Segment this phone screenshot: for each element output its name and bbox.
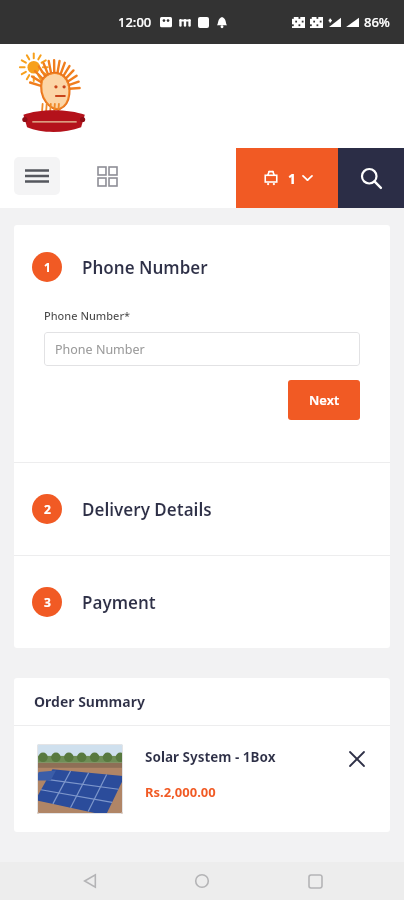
staticText: 1	[288, 169, 297, 188]
button[interactable]: Back	[67, 862, 113, 900]
staticText: Phone Number	[82, 256, 208, 279]
staticText: Rs.2,000.00	[145, 783, 216, 801]
staticText: Payment	[82, 591, 156, 614]
staticText: Phone Number	[55, 341, 145, 358]
button[interactable]: Home logo	[16, 54, 90, 132]
staticText: Delivery Details	[82, 498, 212, 521]
button[interactable]: Recent apps	[292, 862, 338, 900]
button[interactable]: Phone Number	[44, 332, 360, 366]
staticText: 3	[44, 594, 51, 610]
button[interactable]: 1	[236, 148, 338, 208]
staticText: 1	[44, 259, 51, 275]
button[interactable]: Menu	[14, 157, 60, 195]
staticText: Phone Number*	[44, 308, 131, 323]
button[interactable]: Remove item	[342, 744, 372, 774]
staticText: 2	[44, 501, 51, 517]
staticText: 86%	[364, 13, 390, 31]
staticText: Next	[309, 391, 340, 409]
button[interactable]: Home	[179, 862, 225, 900]
button[interactable]: 3	[14, 556, 390, 648]
button[interactable]: Search	[338, 148, 404, 208]
staticText: 12:00	[118, 13, 152, 31]
button[interactable]: 2	[14, 463, 390, 555]
button[interactable]: 1	[14, 252, 390, 282]
button[interactable]: Categories	[89, 158, 125, 194]
staticText: Order Summary	[34, 692, 145, 711]
button[interactable]: Solar System product image	[37, 744, 123, 814]
button[interactable]: Next	[288, 380, 360, 420]
staticText: Solar System - 1Box	[145, 748, 276, 766]
